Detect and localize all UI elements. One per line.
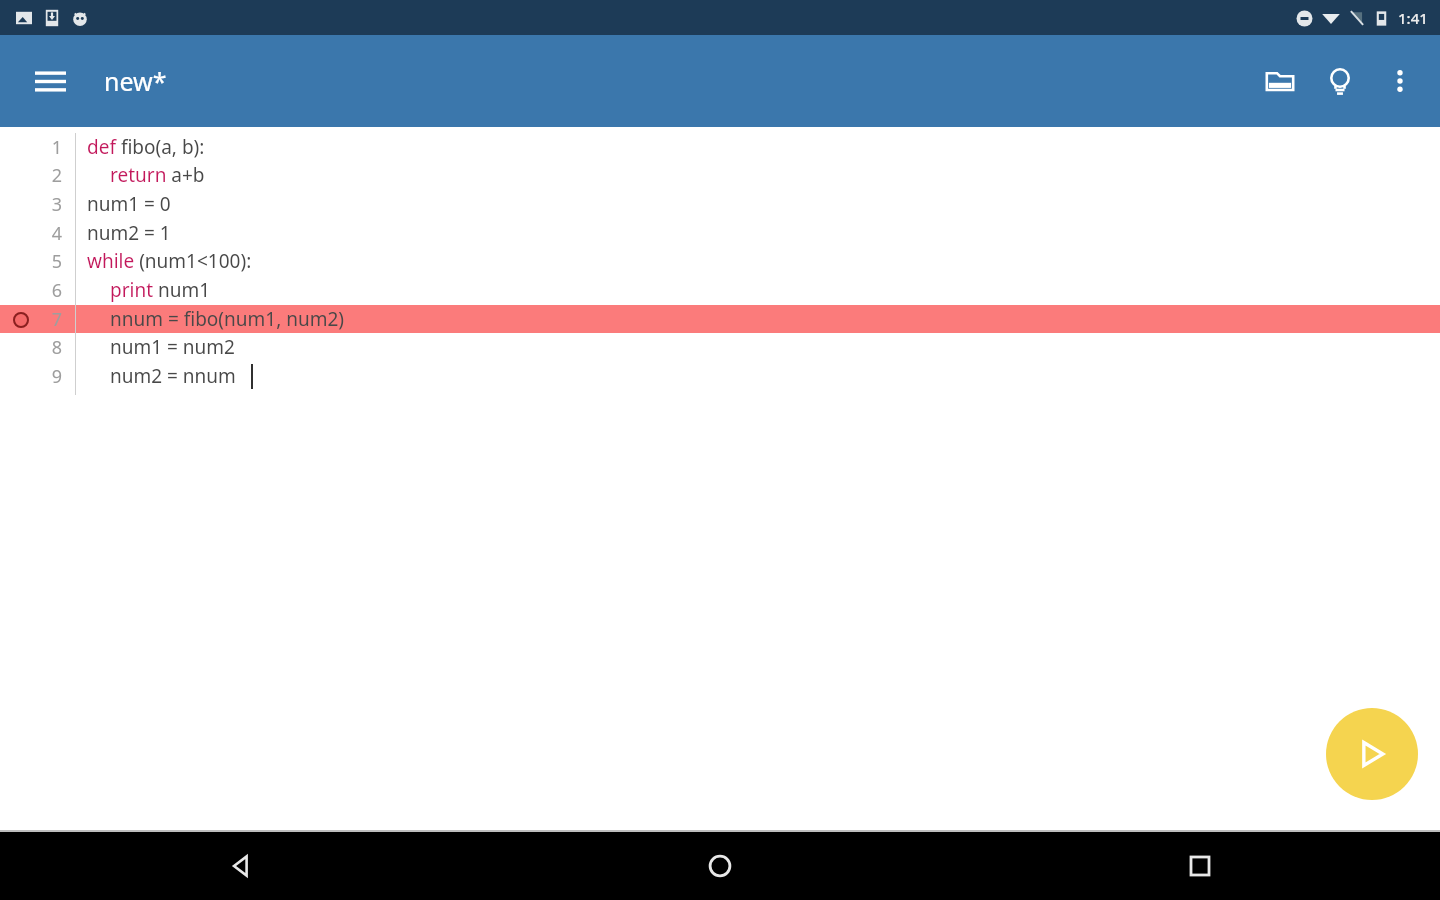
staticText: 9 [51, 364, 62, 389]
staticText: 1 [51, 135, 62, 160]
button[interactable]: Run [1326, 708, 1418, 800]
staticText: return a+b [110, 162, 205, 188]
staticText: print num1 [110, 277, 211, 303]
staticText: 8 [51, 335, 62, 360]
staticText: 4 [51, 221, 62, 246]
staticText: 1:41 [1398, 8, 1428, 28]
button[interactable]: Home [480, 832, 960, 900]
staticText: num2 = nnum [110, 363, 236, 389]
staticText: num2 = 1 [87, 220, 171, 246]
staticText: num1 = num2 [110, 334, 235, 360]
button[interactable]: More options [1370, 51, 1430, 111]
staticText: num1 = 0 [87, 191, 171, 217]
button[interactable]: Back [0, 832, 480, 900]
staticText: 3 [51, 192, 62, 217]
staticText: new* [104, 64, 167, 98]
button[interactable]: Open navigation menu [22, 53, 78, 109]
staticText: 5 [51, 249, 62, 274]
staticText: 6 [51, 278, 62, 303]
button[interactable]: Open file [1250, 51, 1310, 111]
staticText: nnum = fibo(num1, num2) [110, 306, 345, 332]
button[interactable]: Hints [1310, 51, 1370, 111]
button[interactable]: Recent apps [960, 832, 1440, 900]
staticText: while (num1<100): [87, 248, 252, 274]
staticText: 7 [51, 307, 62, 332]
staticText: 2 [51, 163, 62, 188]
staticText: def fibo(a, b): [87, 134, 205, 160]
